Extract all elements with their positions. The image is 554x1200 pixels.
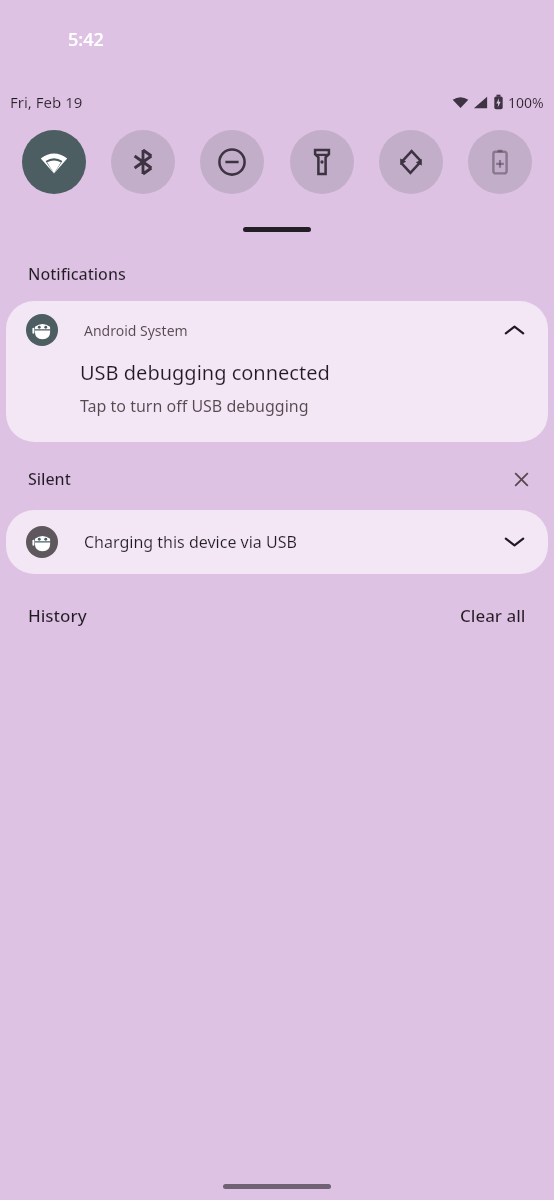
button[interactable]: History bbox=[28, 604, 87, 627]
button[interactable] bbox=[243, 227, 311, 232]
staticText: Charging this device via USB bbox=[84, 531, 297, 553]
button[interactable]: Charging this device via USB bbox=[6, 510, 548, 574]
button[interactable]: Expand notification bbox=[494, 522, 534, 562]
staticText: Notifications bbox=[28, 263, 126, 285]
staticText: Android System bbox=[84, 321, 188, 340]
button[interactable]: Android System bbox=[6, 301, 548, 442]
staticText: 100% bbox=[508, 93, 544, 112]
staticText: Clear all bbox=[460, 604, 526, 627]
staticText: Fri, Feb 19 bbox=[10, 92, 83, 112]
button[interactable]: Flashlight bbox=[290, 130, 354, 194]
staticText: History bbox=[28, 604, 87, 627]
button[interactable]: Auto-rotate bbox=[379, 130, 443, 194]
staticText: Tap to turn off USB debugging bbox=[80, 395, 309, 417]
button[interactable]: Do not disturb bbox=[200, 130, 264, 194]
staticText: Silent bbox=[28, 468, 71, 490]
button[interactable]: Clear silent notifications bbox=[502, 460, 540, 498]
button[interactable]: Battery saver bbox=[468, 130, 532, 194]
button[interactable]: Clear all bbox=[460, 604, 526, 627]
button[interactable]: Bluetooth bbox=[111, 130, 175, 194]
button[interactable]: Collapse notification bbox=[494, 310, 534, 350]
button[interactable]: Wi-Fi bbox=[22, 130, 86, 194]
staticText: 5:42 bbox=[68, 27, 104, 52]
staticText: USB debugging connected bbox=[80, 359, 330, 386]
